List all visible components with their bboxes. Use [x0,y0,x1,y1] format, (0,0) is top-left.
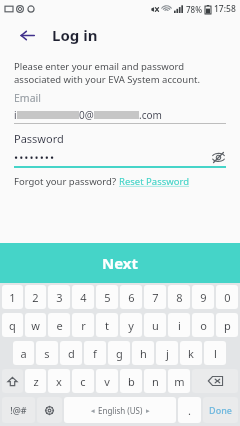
staticText: 3 [56,290,63,305]
button[interactable]: s [36,341,58,365]
staticText: •••••••• [14,150,56,164]
staticText: q [9,318,16,333]
button[interactable]: q [2,313,23,337]
staticText: 4 [80,290,87,305]
staticText: y [128,318,134,333]
button[interactable]: Show password [210,150,226,164]
staticText: u [152,318,159,333]
button[interactable]: 3 [48,285,70,309]
button[interactable]: 4 [72,285,94,309]
staticText: f [93,346,97,361]
staticText: 9 [200,290,207,305]
staticText: Please enter your email and password ass… [14,60,226,86]
button[interactable]: d [60,341,82,365]
button[interactable]: i [168,313,190,337]
staticText: e [56,318,63,333]
staticText: h [140,346,147,361]
button[interactable]: b [120,369,142,393]
button[interactable]: !@# [2,397,35,423]
staticText: n [152,374,159,389]
button[interactable]: e [48,313,70,337]
button[interactable]: 0 [216,285,238,309]
button[interactable]: n [144,369,166,393]
staticText: Reset Password [119,175,190,188]
button[interactable]: f [84,341,106,365]
button[interactable]: k [180,341,202,365]
staticText: g [116,346,123,361]
staticText: b [128,374,135,389]
button[interactable]: a [13,341,34,365]
staticText: ◂ [91,407,95,415]
button[interactable]: t [96,313,118,337]
staticText: Log in [52,25,98,45]
button[interactable]: 5 [96,285,118,309]
button[interactable]: Backspace [192,369,238,393]
button[interactable]: 8 [168,285,190,309]
staticText: 8 [176,290,183,305]
staticText: Done [209,404,232,416]
staticText: 78% [186,4,202,15]
button[interactable]: y [120,313,142,337]
button[interactable]: l [204,341,226,365]
staticText: c [80,374,86,389]
button[interactable]: . [178,397,201,423]
button[interactable]: Shift [2,369,23,393]
button[interactable]: Reset Password [119,175,190,188]
staticText: z [33,374,39,389]
button[interactable]: m [168,369,190,393]
button[interactable]: g [108,341,130,365]
button[interactable]: j [156,341,178,365]
button[interactable]: 7 [144,285,166,309]
staticText: Email [14,91,41,105]
staticText: w [31,318,40,333]
staticText: o [200,318,207,333]
staticText: Password [14,131,64,146]
staticText: 2 [32,290,39,305]
button[interactable]: o [192,313,214,337]
button[interactable]: p [216,313,238,337]
staticText: Next [102,253,139,273]
button[interactable]: ◂ [64,397,176,423]
staticText: p [224,318,231,333]
staticText: k [188,346,194,361]
staticText: ▸ [146,407,150,415]
button[interactable]: u [144,313,166,337]
button[interactable]: Back [14,22,40,48]
button[interactable]: w [25,313,46,337]
button[interactable]: v [96,369,118,393]
staticText: !@# [10,404,27,416]
staticText: 6 [128,290,135,305]
button[interactable]: h [132,341,154,365]
staticText: l [214,346,217,361]
staticText: 1 [9,290,16,305]
staticText: d [68,346,75,361]
staticText: . [188,403,191,418]
staticText: 5 [104,290,111,305]
staticText: a [20,346,27,361]
staticText: r [81,318,86,333]
button[interactable]: Done [203,397,238,423]
button[interactable]: 1 [2,285,23,309]
staticText: s [44,346,50,361]
staticText: English (US) [98,405,143,416]
staticText: i [14,108,17,121]
staticText: 0 [224,290,231,305]
staticText: v [104,374,110,389]
staticText: j [166,346,169,361]
button[interactable]: r [72,313,94,337]
button[interactable]: Next [0,243,240,283]
staticText: x [56,374,62,389]
button[interactable]: 2 [25,285,46,309]
staticText: 0@ [79,108,94,121]
staticText: 7 [152,290,159,305]
button[interactable]: Keyboard settings [37,397,62,423]
staticText: m [174,374,185,389]
staticText: Forgot your password? [14,175,119,188]
button[interactable]: 9 [192,285,214,309]
button[interactable]: z [25,369,46,393]
staticText: 17:58 [214,3,236,15]
button[interactable]: c [72,369,94,393]
button[interactable]: x [48,369,70,393]
button[interactable]: 6 [120,285,142,309]
staticText: .com [139,108,162,121]
